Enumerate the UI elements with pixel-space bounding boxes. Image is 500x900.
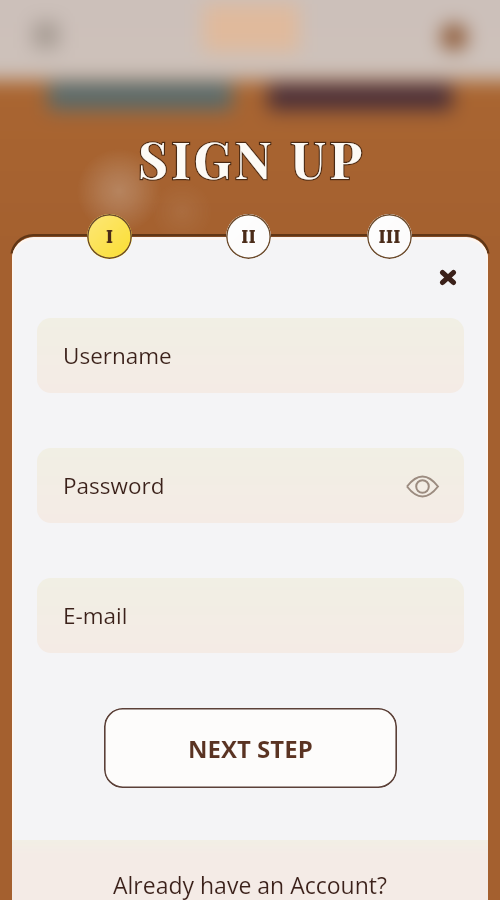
button[interactable]: Show password bbox=[404, 468, 440, 504]
staticText: SIGN UP bbox=[138, 124, 366, 192]
staticText: Password bbox=[63, 470, 165, 501]
staticText: E-mail bbox=[63, 600, 128, 631]
button[interactable]: Close bbox=[431, 260, 465, 294]
button[interactable] bbox=[367, 214, 412, 259]
button[interactable]: Already have an Account? bbox=[12, 840, 488, 900]
button[interactable]: Password bbox=[37, 448, 464, 523]
staticText: SIGN UP bbox=[138, 124, 366, 192]
staticText: Already have an Account? bbox=[113, 869, 387, 900]
button[interactable]: NEXT STEP bbox=[104, 708, 397, 788]
button[interactable]: Username bbox=[37, 318, 464, 393]
button[interactable]: E-mail bbox=[37, 578, 464, 653]
staticText: Username bbox=[63, 340, 172, 371]
button[interactable] bbox=[226, 214, 271, 259]
staticText: NEXT STEP bbox=[188, 732, 313, 765]
button[interactable] bbox=[87, 214, 132, 259]
